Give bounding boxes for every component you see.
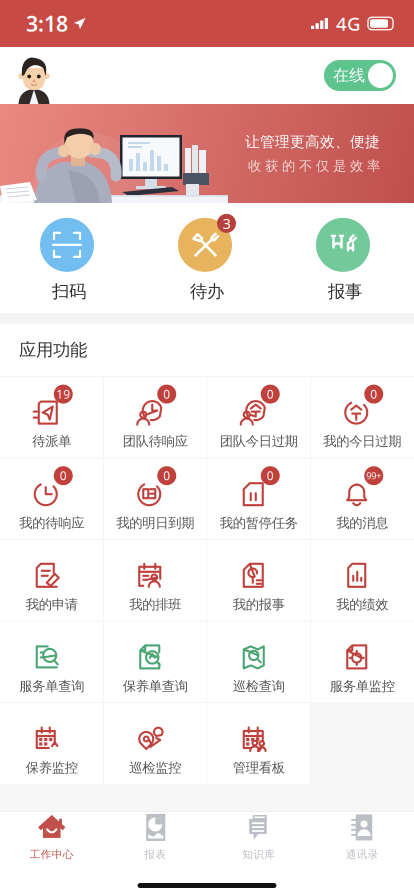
button[interactable]: 19 — [0, 377, 103, 458]
staticText: 我的申请 — [26, 596, 78, 613]
button[interactable]: 通讯录 — [310, 812, 414, 862]
staticText: 4G — [336, 11, 361, 36]
staticText: 巡检监控 — [129, 760, 181, 776]
staticText: 我的暂停任务 — [220, 515, 298, 531]
button[interactable]: 报表 — [103, 812, 207, 862]
button[interactable]: 知识库 — [207, 812, 310, 862]
button[interactable]: 巡检监控 — [103, 703, 207, 784]
staticText: 我的待响应 — [19, 515, 84, 531]
button[interactable]: 我的申请 — [0, 540, 103, 621]
staticText: 19 — [56, 386, 70, 402]
button[interactable]: 服务单监控 — [310, 621, 414, 702]
button[interactable]: Profile — [0, 47, 62, 104]
button[interactable]: 保养单查询 — [103, 621, 207, 702]
staticText: 待派单 — [32, 433, 71, 450]
staticText: 0 — [370, 386, 377, 402]
staticText: 保养单查询 — [123, 678, 188, 694]
button[interactable]: 我的排班 — [103, 540, 207, 621]
button[interactable]: 0 — [310, 377, 414, 458]
staticText: 0 — [267, 386, 274, 402]
button[interactable]: 0 — [0, 458, 103, 539]
button[interactable]: 0 — [207, 377, 310, 458]
staticText: 收 获 的 不 仅 是 效 率 — [248, 158, 380, 174]
button[interactable]: 工作中心 — [0, 812, 103, 862]
staticText: 报事 — [328, 281, 362, 302]
staticText: 我的报事 — [233, 596, 285, 613]
button[interactable]: 我的报事 — [207, 540, 310, 621]
staticText: 0 — [267, 468, 274, 484]
staticText: 0 — [163, 468, 170, 484]
staticText: 应用功能 — [19, 339, 87, 361]
staticText: 通讯录 — [346, 848, 379, 861]
button[interactable]: 扫码 — [0, 214, 138, 302]
button[interactable]: 管理看板 — [207, 703, 310, 784]
staticText: 管理看板 — [233, 760, 285, 776]
staticText: 0 — [60, 468, 67, 484]
staticText: 3 — [222, 214, 230, 233]
staticText: 99+ — [366, 469, 381, 482]
button[interactable]: 0 — [103, 377, 207, 458]
staticText: 团队今日过期 — [220, 433, 298, 450]
staticText: 在线 — [333, 66, 365, 85]
staticText: 知识库 — [242, 848, 275, 861]
staticText: 我的今日过期 — [323, 433, 401, 450]
staticText: 我的绩效 — [336, 596, 388, 613]
staticText: 我的排班 — [129, 596, 181, 613]
staticText: 保养监控 — [26, 760, 78, 776]
button[interactable]: 保养监控 — [0, 703, 103, 784]
staticText: 巡检查询 — [233, 678, 285, 694]
staticText: 让管理更高效、便捷 — [245, 133, 380, 151]
staticText: 团队待响应 — [123, 433, 188, 450]
staticText: 我的明日到期 — [116, 515, 194, 531]
button[interactable]: 0 — [103, 458, 207, 539]
button[interactable]: 在线 — [324, 60, 414, 91]
button[interactable]: 服务单查询 — [0, 621, 103, 702]
staticText: 服务单查询 — [19, 678, 84, 694]
button[interactable]: 巡检查询 — [207, 621, 310, 702]
staticText: 服务单监控 — [330, 678, 395, 694]
staticText: 0 — [163, 386, 170, 402]
staticText: 3:18 — [26, 9, 68, 38]
button[interactable]: 99+ — [310, 458, 414, 539]
staticText: 工作中心 — [30, 848, 74, 861]
button[interactable]: 3 — [138, 214, 276, 302]
button[interactable]: 0 — [207, 458, 310, 539]
staticText: 我的消息 — [336, 515, 388, 531]
staticText: 扫码 — [52, 281, 86, 302]
button[interactable]: 我的绩效 — [310, 540, 414, 621]
staticText: 报表 — [144, 848, 166, 861]
staticText: 待办 — [190, 281, 224, 302]
button[interactable]: 报事 — [276, 214, 414, 302]
